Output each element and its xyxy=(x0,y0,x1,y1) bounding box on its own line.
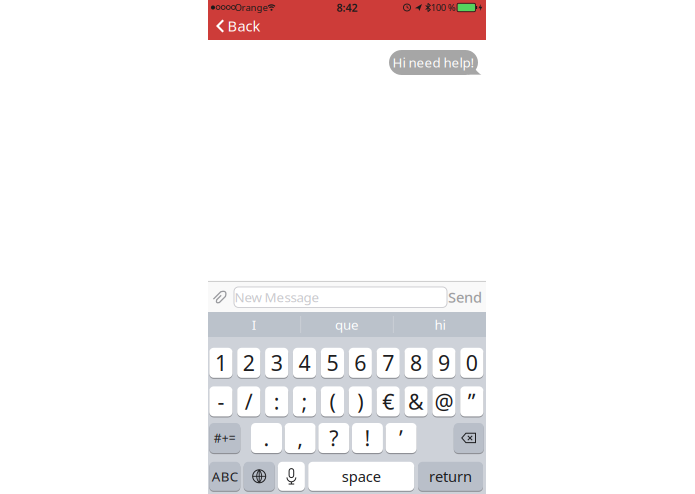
button[interactable]: : xyxy=(265,386,288,416)
staticText: @ xyxy=(434,387,453,415)
staticText: 9 xyxy=(438,349,450,377)
staticText: que xyxy=(335,316,359,333)
button[interactable]: 5 xyxy=(321,348,344,378)
button[interactable]: ( xyxy=(321,386,344,416)
button[interactable]: New Message xyxy=(234,287,447,307)
staticText: ) xyxy=(357,387,363,415)
staticText: 5 xyxy=(326,349,338,377)
staticText: return xyxy=(429,467,472,486)
staticText: ’ xyxy=(399,424,403,452)
button[interactable]: 9 xyxy=(432,348,455,378)
button[interactable]: 4 xyxy=(293,348,316,378)
button[interactable]: que xyxy=(302,312,392,337)
button[interactable]: Send xyxy=(444,286,486,308)
button[interactable]: space xyxy=(308,462,414,491)
button[interactable]: ) xyxy=(349,386,372,416)
staticText: Orange xyxy=(234,1,267,14)
button[interactable]: & xyxy=(404,386,428,416)
staticText: I xyxy=(252,316,257,333)
staticText: #+= xyxy=(214,430,236,446)
button[interactable]: ’ xyxy=(386,423,417,453)
staticText: Back xyxy=(227,16,260,35)
button[interactable]: € xyxy=(377,386,400,416)
staticText: 100 % xyxy=(431,1,456,14)
button[interactable]: ; xyxy=(293,386,316,416)
staticText: . xyxy=(263,424,269,452)
button[interactable]: Dictate xyxy=(278,462,305,491)
button[interactable]: / xyxy=(237,386,260,416)
button[interactable]: ” xyxy=(460,386,483,416)
staticText: : xyxy=(274,387,280,415)
button[interactable]: Attach xyxy=(210,286,230,306)
button[interactable]: 0 xyxy=(460,348,483,378)
staticText: Send xyxy=(448,287,482,307)
staticText: / xyxy=(245,387,253,415)
staticText: 4 xyxy=(298,349,310,377)
staticText: 8:42 xyxy=(336,0,357,15)
button[interactable]: I xyxy=(209,312,299,337)
button[interactable]: ! xyxy=(352,423,383,453)
staticText: , xyxy=(297,424,303,452)
staticText: ! xyxy=(364,424,370,452)
staticText: 3 xyxy=(271,349,283,377)
button[interactable]: . xyxy=(251,423,282,453)
staticText: € xyxy=(382,387,394,415)
staticText: ABC xyxy=(212,467,238,485)
staticText: 6 xyxy=(354,349,366,377)
staticText: 1 xyxy=(215,349,227,377)
button[interactable]: Back xyxy=(209,13,265,39)
staticText: 2 xyxy=(243,349,255,377)
button[interactable]: @ xyxy=(432,386,455,416)
staticText: Hi need help! xyxy=(392,53,474,71)
staticText: 8 xyxy=(410,349,422,377)
staticText: & xyxy=(408,387,424,415)
button[interactable]: 7 xyxy=(377,348,400,378)
staticText: ” xyxy=(468,387,476,415)
staticText: ; xyxy=(301,387,307,415)
button[interactable]: , xyxy=(285,423,316,453)
button[interactable]: Next keyboard xyxy=(244,462,275,491)
button[interactable]: - xyxy=(209,386,232,416)
button[interactable]: #+= xyxy=(209,423,240,453)
button[interactable]: 3 xyxy=(265,348,288,378)
staticText: 7 xyxy=(382,349,394,377)
staticText: 0 xyxy=(466,349,478,377)
staticText: New Message xyxy=(234,288,319,306)
staticText: hi xyxy=(434,316,445,333)
staticText: ? xyxy=(329,424,338,452)
button[interactable]: 8 xyxy=(404,348,428,378)
button[interactable]: 1 xyxy=(209,348,232,378)
staticText: space xyxy=(342,467,381,486)
button[interactable]: hi xyxy=(395,312,485,337)
staticText: - xyxy=(217,387,224,415)
button[interactable]: ? xyxy=(318,423,349,453)
button[interactable]: 2 xyxy=(237,348,260,378)
button[interactable]: ABC xyxy=(209,462,240,491)
button[interactable]: return xyxy=(418,462,483,491)
button[interactable]: Delete xyxy=(454,423,484,453)
button[interactable]: 6 xyxy=(349,348,372,378)
staticText: ( xyxy=(329,387,335,415)
